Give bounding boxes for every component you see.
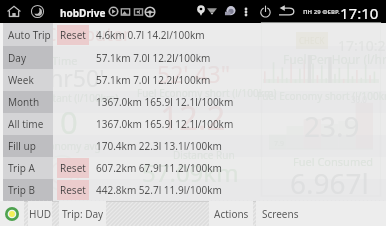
staticText: 57.09km <box>142 156 239 189</box>
staticText: 30.0 <box>351 94 367 105</box>
button[interactable]: Week <box>0 69 386 91</box>
staticText: 17:10:25 <box>338 36 386 55</box>
staticText: All time <box>8 117 44 131</box>
button[interactable]: Trip: Day <box>59 201 106 226</box>
staticText: ПН 29 ФЕВР. <box>303 8 340 16</box>
staticText: Time <box>52 53 78 68</box>
staticText: 170.4km 22.3l 13.1l/100km <box>96 139 222 153</box>
staticText: 52' 43" <box>157 58 231 89</box>
staticText: Trip Computer <box>8 22 131 47</box>
staticText: Fuel Instant (l/100km) <box>16 91 119 105</box>
staticText: Fuel Per Hour (l/hr) <box>283 51 386 67</box>
button[interactable]: Reset <box>57 158 89 178</box>
staticText: 442.8km 52.7l 11.9l/100km <box>96 183 222 197</box>
staticText: 5hr50' <box>36 62 105 93</box>
staticText: 1367.0km 165.9l 12.1l/100km <box>96 117 234 131</box>
staticText: Actions <box>214 207 249 221</box>
staticText: Auto Trip <box>8 28 51 42</box>
staticText: Reset <box>60 28 86 42</box>
staticText: Trip: Day <box>62 207 104 221</box>
button[interactable]: Reset <box>57 25 89 45</box>
staticText: 607.2km 67.9l 11.2l/100km <box>96 161 222 175</box>
staticText: Reset <box>60 161 86 175</box>
staticText: Trip B <box>8 183 36 197</box>
staticText: Day <box>8 51 27 65</box>
staticText: 17:10 <box>340 3 379 23</box>
button[interactable]: Fill up <box>0 135 386 157</box>
staticText: Distance Run <box>173 148 235 162</box>
button[interactable]: Connection status <box>0 201 24 226</box>
button[interactable]: Reset <box>57 180 89 200</box>
button[interactable]: HUD <box>28 201 52 226</box>
staticText: 12.2 <box>160 95 226 140</box>
staticText: Fill up <box>8 139 36 153</box>
button[interactable]: Trip A <box>0 157 386 179</box>
staticText: 23.9 <box>304 107 360 145</box>
button[interactable]: Screens <box>256 201 386 226</box>
button[interactable]: Back <box>278 5 295 17</box>
button[interactable]: Power <box>259 5 272 18</box>
staticText: hobDrive <box>60 6 106 20</box>
button[interactable]: Auto Trip <box>0 23 386 46</box>
button[interactable]: All time <box>0 113 386 135</box>
button[interactable]: Day <box>0 46 386 69</box>
staticText: 6.967l <box>290 164 369 202</box>
staticText: 1367.0km 165.9l 12.1l/100km <box>96 95 234 109</box>
button[interactable]: Recent apps <box>26 0 48 23</box>
staticText: 0 <box>60 101 78 143</box>
staticText: Fuel Economy short (l/100km) <box>257 89 386 103</box>
staticText: 57.1km 7.0l 12.2l/100km <box>96 51 211 65</box>
staticText: Week <box>8 73 34 87</box>
staticText: Trip A <box>8 161 35 175</box>
staticText: Fuel Economy avg <box>16 139 101 153</box>
staticText: Reset <box>60 183 86 197</box>
staticText: 57.1km 7.0l 12.2l/100km <box>96 73 211 87</box>
staticText: 4.6km 0.7l 14.2l/100km <box>96 28 205 42</box>
button[interactable]: Month <box>0 91 386 113</box>
button[interactable]: Home <box>2 0 26 23</box>
staticText: Fuel Economy short (l/100km) <box>137 86 277 100</box>
staticText: Screens <box>262 207 299 221</box>
staticText: HUD <box>29 207 52 221</box>
staticText: Fuel Consumed <box>293 154 374 169</box>
staticText: Month <box>8 95 40 109</box>
button[interactable]: Actions <box>209 201 253 226</box>
button[interactable]: Trip B <box>0 179 386 201</box>
